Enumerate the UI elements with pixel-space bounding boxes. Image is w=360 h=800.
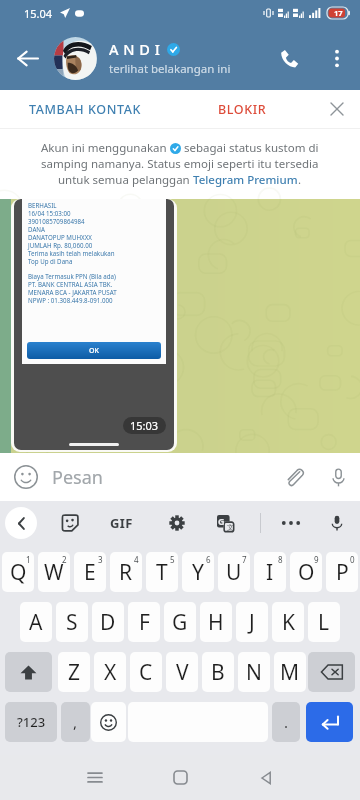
button[interactable]: GIF xyxy=(104,506,138,540)
staticText: DANATOPUP MUHXXX xyxy=(28,233,92,241)
button[interactable]: Y xyxy=(182,552,214,592)
button[interactable]: Attach xyxy=(272,453,316,501)
staticText: K xyxy=(282,608,295,637)
button[interactable]: Shift xyxy=(5,652,52,692)
staticText: 17 xyxy=(334,8,343,18)
staticText: 4 xyxy=(134,554,139,565)
staticText: X xyxy=(104,658,117,687)
button[interactable]: Q xyxy=(2,552,34,592)
button[interactable]: W xyxy=(38,552,70,592)
staticText: , xyxy=(73,712,78,732)
button[interactable]: Home xyxy=(137,755,223,800)
button[interactable]: R xyxy=(110,552,142,592)
button[interactable]: . xyxy=(272,702,300,742)
button[interactable]: Translate xyxy=(209,507,241,539)
button[interactable]: Recents xyxy=(52,755,137,800)
staticText: O xyxy=(298,558,315,587)
button[interactable]: G xyxy=(164,602,196,642)
button[interactable]: S xyxy=(56,602,88,642)
staticText: . xyxy=(284,712,289,732)
staticText: Biaya Termasuk PPN (Bila ada) xyxy=(28,272,116,280)
button[interactable]: Z xyxy=(58,652,90,692)
button[interactable]: Call xyxy=(265,26,313,90)
button[interactable]: O xyxy=(290,552,322,592)
staticText: 8 xyxy=(278,554,283,565)
staticText: 3901085709864984 xyxy=(28,217,85,225)
button[interactable]: B xyxy=(202,652,234,692)
staticText: samping namanya. Status emoji seperti it… xyxy=(41,156,319,172)
staticText: I xyxy=(266,558,274,587)
button[interactable]: ?123 xyxy=(5,702,57,742)
staticText: Pesan xyxy=(52,465,103,490)
button[interactable]: T xyxy=(146,552,178,592)
button[interactable]: BLOKIR xyxy=(170,90,314,128)
button[interactable]: Photo message xyxy=(11,199,177,452)
staticText: 16/04 15:03:00 xyxy=(28,209,71,217)
button[interactable]: V xyxy=(166,652,198,692)
button[interactable]: Voice message xyxy=(316,453,360,501)
button[interactable]: Settings xyxy=(161,507,193,539)
staticText: T xyxy=(156,558,168,587)
button[interactable]: L xyxy=(308,602,340,642)
staticText: Akun ini menggunakan xyxy=(41,140,170,156)
staticText: . xyxy=(298,172,302,188)
button[interactable]: Backspace xyxy=(308,652,355,692)
staticText: ?123 xyxy=(17,713,46,731)
staticText: B xyxy=(211,658,225,687)
staticText: 0 xyxy=(350,554,355,565)
button[interactable]: P xyxy=(326,552,358,592)
button[interactable]: Back xyxy=(0,26,54,90)
button[interactable]: X xyxy=(94,652,126,692)
staticText: A N D I xyxy=(109,39,161,59)
button[interactable]: TAMBAH KONTAK xyxy=(0,90,170,128)
button[interactable]: Back xyxy=(5,507,37,539)
button[interactable]: Emoji xyxy=(0,453,52,501)
staticText: G xyxy=(218,515,225,527)
staticText: Z xyxy=(68,658,81,687)
staticText: 15.04 xyxy=(24,6,53,21)
staticText: 7 xyxy=(242,554,247,565)
staticText: 9 xyxy=(314,554,319,565)
staticText: H xyxy=(208,608,224,637)
button[interactable]: More options xyxy=(313,26,360,90)
button[interactable]: K xyxy=(272,602,304,642)
button[interactable]: C xyxy=(130,652,162,692)
button[interactable]: J xyxy=(236,602,268,642)
staticText: P xyxy=(336,558,349,587)
staticText: V xyxy=(176,658,189,687)
staticText: Telegram Premium xyxy=(193,172,298,188)
staticText: F xyxy=(139,608,150,637)
button[interactable]: H xyxy=(200,602,232,642)
button[interactable]: , xyxy=(61,702,90,742)
staticText: BLOKIR xyxy=(218,101,267,118)
button[interactable]: Enter xyxy=(306,702,353,742)
button[interactable]: N xyxy=(238,652,270,692)
button[interactable]: Voice input xyxy=(321,507,353,539)
button[interactable]: More xyxy=(275,507,307,539)
staticText: 1 xyxy=(26,554,31,565)
staticText: Terima kasih telah melakukan xyxy=(28,249,115,257)
button[interactable]: I xyxy=(254,552,286,592)
button[interactable]: Stickers xyxy=(54,507,86,539)
staticText: BERHASIL xyxy=(28,201,57,209)
button[interactable]: A xyxy=(20,602,52,642)
button[interactable]: Profile photo xyxy=(54,37,97,80)
button[interactable]: M xyxy=(274,652,306,692)
staticText: 2 xyxy=(62,554,67,565)
staticText: U xyxy=(226,558,242,587)
staticText: Q xyxy=(10,558,27,587)
button[interactable]: Back xyxy=(223,755,308,800)
button[interactable]: Close xyxy=(314,90,360,128)
staticText: L xyxy=(318,608,330,637)
staticText: S xyxy=(66,608,78,637)
button[interactable]: F xyxy=(128,602,160,642)
staticText: G xyxy=(172,608,188,637)
staticText: Top Up di Dana xyxy=(28,257,73,265)
button[interactable]: D xyxy=(92,602,124,642)
staticText: 15:03 xyxy=(130,418,159,433)
staticText: M xyxy=(280,658,300,687)
button[interactable]: U xyxy=(218,552,250,592)
button[interactable]: E xyxy=(74,552,106,592)
button[interactable]: Emoji xyxy=(91,702,126,742)
